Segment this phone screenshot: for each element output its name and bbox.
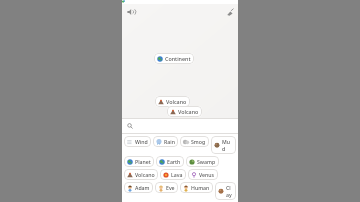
- button[interactable]: Volcano: [124, 169, 158, 180]
- button[interactable]: Clay: [215, 182, 236, 200]
- staticText: Lava: [171, 171, 183, 178]
- button[interactable]: Mud: [211, 136, 236, 154]
- staticText: Earth: [167, 158, 181, 165]
- staticText: Smog: [191, 138, 206, 145]
- button[interactable]: Earth: [156, 156, 184, 167]
- button[interactable]: Volcano: [155, 96, 190, 107]
- button[interactable]: Human: [180, 182, 213, 193]
- staticText: Swamp: [197, 158, 216, 165]
- staticText: Wind: [135, 138, 148, 145]
- staticText: Venus: [199, 171, 215, 178]
- staticText: Mud: [222, 138, 233, 152]
- staticText: Volcano: [135, 171, 155, 178]
- button[interactable]: Sound: [124, 5, 137, 18]
- staticText: Eve: [166, 184, 175, 191]
- button[interactable]: Wind: [124, 136, 151, 147]
- button[interactable]: Planet: [124, 156, 154, 167]
- button[interactable]: Venus: [188, 169, 218, 180]
- staticText: Planet: [135, 158, 151, 165]
- button[interactable]: Volcano: [167, 106, 202, 117]
- button[interactable]: Lava: [160, 169, 186, 180]
- staticText: Volcano: [178, 108, 199, 115]
- button[interactable]: Swamp: [186, 156, 219, 167]
- staticText: Human: [191, 184, 210, 191]
- button[interactable]: Search: [122, 119, 238, 133]
- button[interactable]: Rain: [153, 136, 178, 147]
- staticText: Volcano: [166, 98, 187, 105]
- staticText: Rain: [164, 138, 175, 145]
- button[interactable]: Smog: [180, 136, 209, 147]
- staticText: Continent: [165, 55, 191, 62]
- staticText: Adam: [135, 184, 150, 191]
- button[interactable]: Adam: [124, 182, 153, 193]
- staticText: Clay: [226, 184, 233, 198]
- button[interactable]: Reset board: [223, 5, 236, 18]
- other: Search: [127, 123, 133, 129]
- button[interactable]: Continent: [154, 53, 194, 64]
- button[interactable]: Eve: [155, 182, 178, 193]
